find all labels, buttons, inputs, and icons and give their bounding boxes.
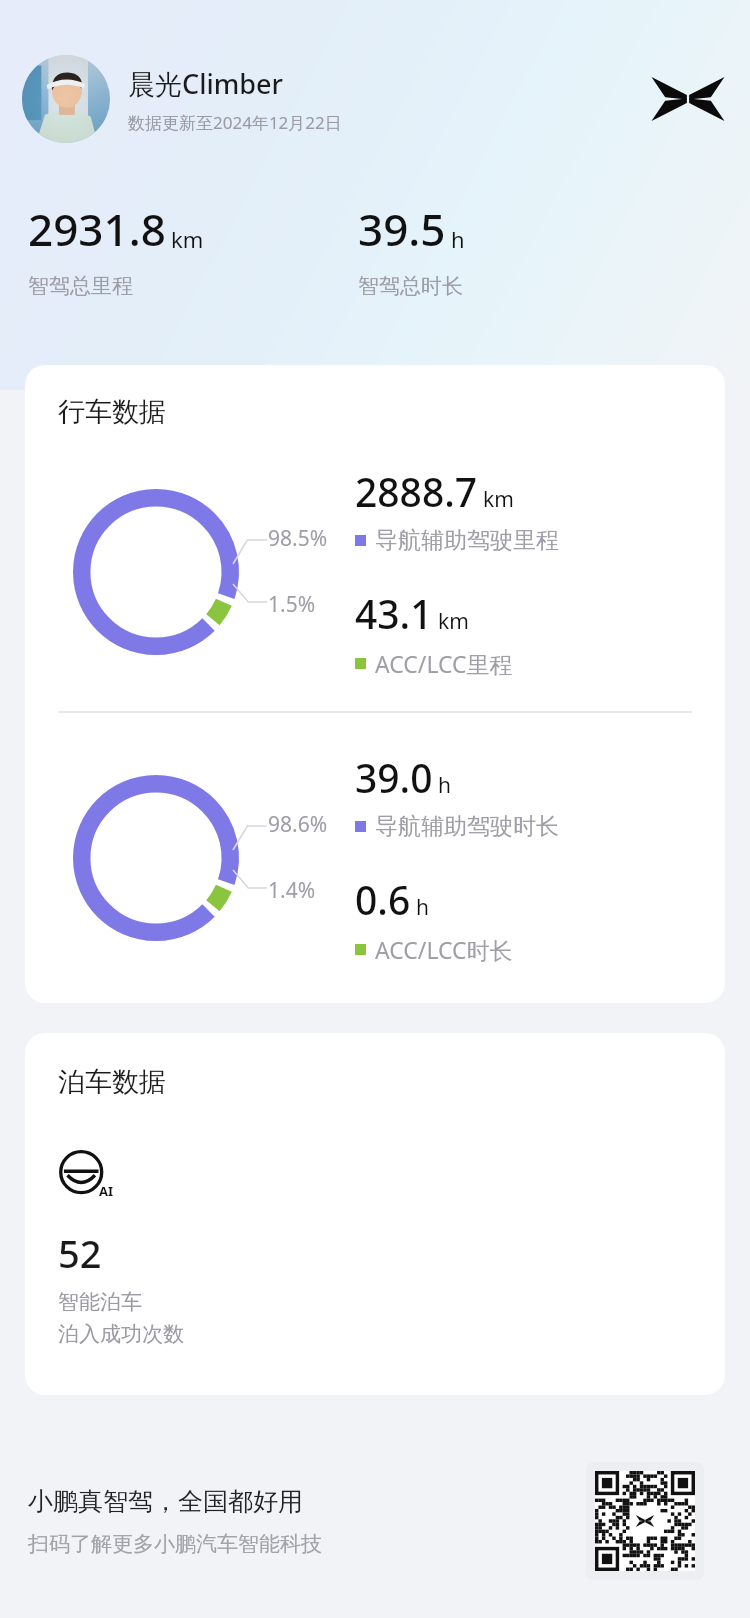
staticText: 泊车数据 <box>58 1065 166 1099</box>
staticText: 小鹏真智驾，全国都好用 <box>28 1486 303 1517</box>
staticText: km <box>438 607 469 636</box>
staticText: h <box>416 893 429 922</box>
staticText: 1.5% <box>268 590 316 619</box>
staticText: km <box>483 485 514 514</box>
staticText: 智能泊车 <box>58 1289 142 1315</box>
staticText: 0.6 <box>355 873 411 926</box>
staticText: 98.6% <box>268 810 328 839</box>
staticText: 1.4% <box>268 876 316 905</box>
other: XPeng logo <box>648 71 728 127</box>
staticText: 晨光Climber <box>128 65 283 102</box>
staticText: 98.5% <box>268 524 328 553</box>
staticText: AI <box>99 1182 114 1200</box>
staticText: 39.5 <box>358 199 446 259</box>
staticText: 39.0 <box>355 751 433 804</box>
button[interactable]: 行车数据 <box>25 365 725 1003</box>
staticText: 智驾总里程 <box>28 273 133 299</box>
staticText: 行车数据 <box>58 395 166 429</box>
button[interactable]: 泊车数据 <box>25 1033 725 1395</box>
staticText: h <box>451 224 465 254</box>
staticText: 52 <box>58 1227 102 1279</box>
staticText: 2931.8 <box>28 199 166 259</box>
staticText: 导航辅助驾驶里程 <box>375 526 559 555</box>
staticText: 导航辅助驾驶时长 <box>375 812 559 841</box>
button[interactable]: QR code <box>586 1462 704 1580</box>
staticText: ACC/LCC时长 <box>375 934 513 965</box>
staticText: 数据更新至2024年12月22日 <box>128 111 342 134</box>
staticText: ACC/LCC里程 <box>375 648 513 679</box>
staticText: km <box>171 224 204 254</box>
staticText: 2888.7 <box>355 465 478 518</box>
button[interactable]: Profile photo <box>22 55 110 143</box>
staticText: 扫码了解更多小鹏汽车智能科技 <box>28 1531 322 1557</box>
staticText: 泊入成功次数 <box>58 1321 184 1347</box>
staticText: 43.1 <box>355 587 433 640</box>
staticText: 智驾总时长 <box>358 273 463 299</box>
staticText: h <box>438 771 451 800</box>
